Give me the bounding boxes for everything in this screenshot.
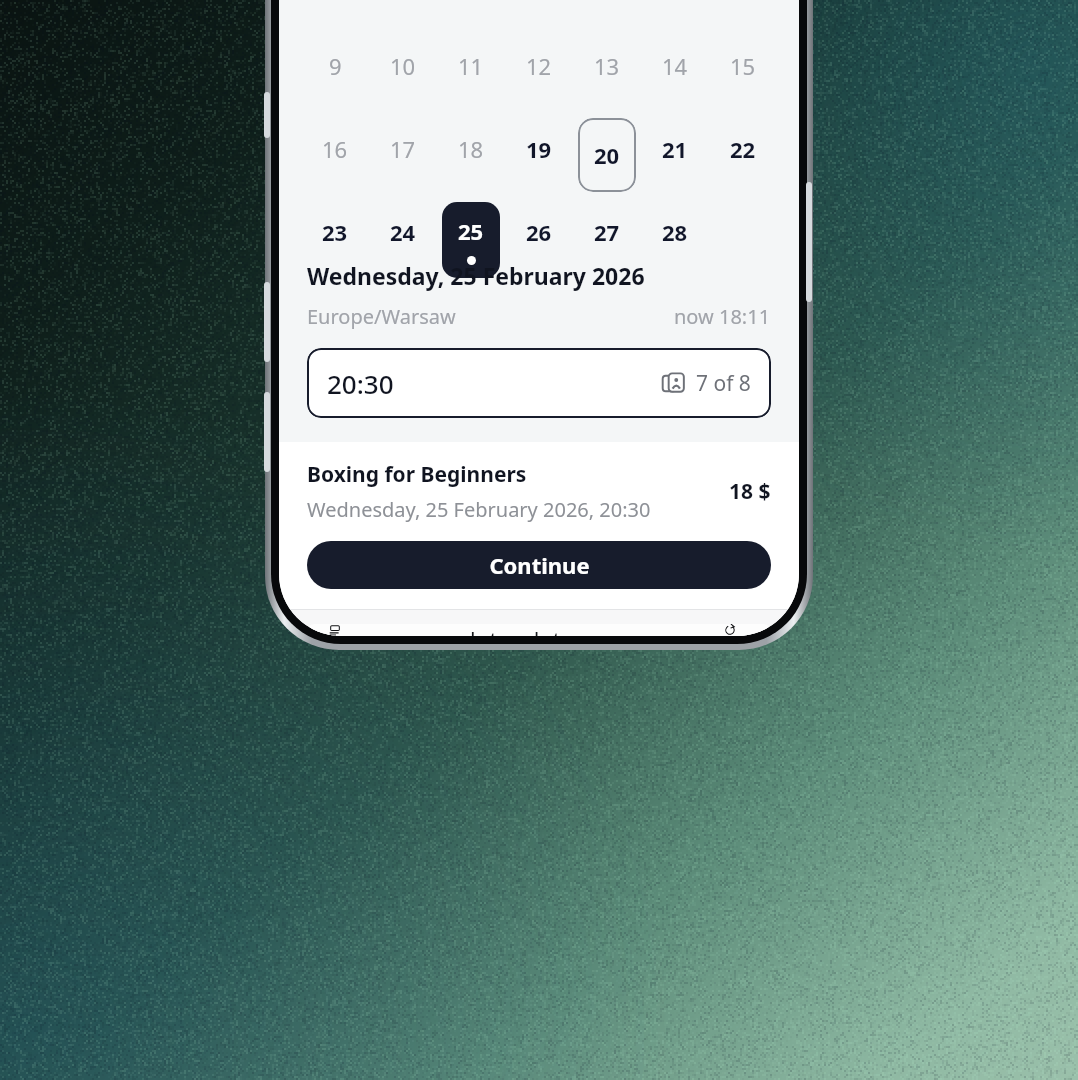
button[interactable]: 17 [374, 125, 432, 173]
staticText: 13 [594, 51, 620, 81]
staticText: 19 [526, 134, 552, 164]
button[interactable]: 19 [510, 125, 568, 173]
button[interactable]: 20:30 [307, 348, 771, 418]
staticText: 9 [329, 51, 342, 81]
staticText: 25 [458, 216, 484, 246]
staticText: 20 [594, 140, 620, 170]
staticText: 18 [458, 134, 484, 164]
button[interactable]: Page settings [308, 624, 770, 636]
staticText: Boxing for Beginners [307, 460, 527, 489]
button[interactable]: 23 [306, 208, 364, 256]
staticText: 28 [662, 217, 688, 247]
button[interactable]: 15 [714, 42, 772, 90]
button[interactable]: 9 [306, 42, 364, 90]
staticText: Wednesday, 25 February 2026 [307, 260, 645, 291]
button[interactable]: 13 [578, 42, 636, 90]
staticText: 26 [526, 217, 552, 247]
button[interactable]: 24 [374, 208, 432, 256]
staticText: b.tapslot.app [470, 624, 607, 636]
staticText: 14 [662, 51, 688, 81]
button[interactable]: 22 [714, 125, 772, 173]
staticText: 17 [390, 134, 416, 164]
staticText: 22 [730, 134, 756, 164]
button[interactable]: 21 [646, 125, 704, 173]
button[interactable]: Continue [307, 541, 771, 589]
staticText: 15 [730, 51, 756, 81]
staticText: 11 [458, 51, 484, 81]
other: Page settings [329, 624, 354, 636]
other: Reload [724, 624, 749, 636]
staticText: Wednesday, 25 February 2026, 20:30 [307, 496, 651, 523]
other: Spots left [662, 372, 685, 395]
button[interactable]: 25 [442, 202, 500, 278]
staticText: 16 [322, 134, 348, 164]
staticText: 10 [390, 51, 416, 81]
staticText: 23 [322, 217, 348, 247]
staticText: 20:30 [327, 366, 394, 401]
staticText: 12 [526, 51, 552, 81]
button[interactable]: 20 [578, 118, 636, 192]
staticText: Continue [489, 550, 590, 580]
staticText: 24 [390, 217, 416, 247]
staticText: now 18:11 [674, 303, 771, 330]
staticText: 27 [594, 217, 620, 247]
button[interactable]: 11 [442, 42, 500, 90]
button[interactable]: 14 [646, 42, 704, 90]
staticText: 18 $ [729, 477, 771, 506]
staticText: Europe/Warsaw [307, 303, 456, 330]
button[interactable]: 18 [442, 125, 500, 173]
button[interactable]: 26 [510, 208, 568, 256]
staticText: 7 of 8 [696, 369, 751, 398]
button[interactable]: 16 [306, 125, 364, 173]
button[interactable]: 27 [578, 208, 636, 256]
button[interactable]: 10 [374, 42, 432, 90]
button[interactable]: 28 [646, 208, 704, 256]
button[interactable]: 12 [510, 42, 568, 90]
staticText: 21 [662, 134, 688, 164]
